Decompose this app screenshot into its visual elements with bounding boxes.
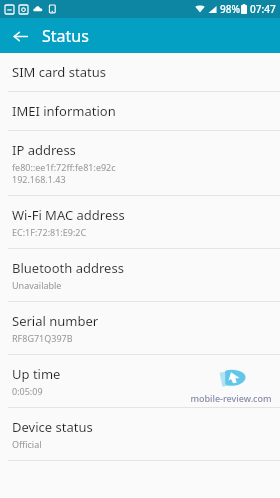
staticText: 98% (220, 2, 240, 16)
staticText: Official (12, 438, 42, 450)
button[interactable]: Bluetooth address (0, 249, 280, 301)
button[interactable]: IP address (0, 131, 280, 195)
button[interactable]: SIM card status (0, 53, 280, 91)
staticText: 192.168.1.43 (12, 173, 66, 185)
button[interactable]: Back (7, 23, 33, 49)
staticText: mobile-review.com (190, 392, 272, 404)
staticText: Serial number (12, 312, 99, 330)
staticText: IP address (12, 141, 76, 159)
staticText: Device status (12, 418, 93, 436)
button[interactable]: IMEI information (0, 92, 280, 130)
staticText: Unavailable (12, 279, 62, 291)
staticText: Up time (12, 365, 61, 383)
staticText: 0:05:09 (12, 385, 43, 397)
staticText: RF8G71Q397B (12, 332, 73, 344)
staticText: IMEI information (12, 102, 116, 120)
staticText: Status (42, 25, 89, 47)
staticText: SIM card status (12, 63, 106, 81)
button[interactable]: Up time (0, 355, 280, 407)
staticText: Bluetooth address (12, 259, 124, 277)
button[interactable]: Serial number (0, 302, 280, 354)
staticText: Wi-Fi MAC address (12, 206, 125, 224)
button[interactable]: Device status (0, 408, 280, 460)
staticText: EC:1F:72:81:E9:2C (12, 226, 87, 238)
staticText: 07:47 (250, 2, 276, 16)
staticText: fe80::ee1f:72ff:fe81:e92c (12, 161, 116, 173)
button[interactable]: Wi-Fi MAC address (0, 196, 280, 248)
